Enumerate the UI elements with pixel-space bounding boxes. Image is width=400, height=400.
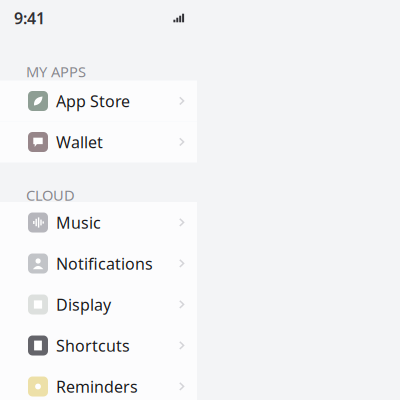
button[interactable]: Shortcuts xyxy=(0,325,197,366)
button[interactable]: Display xyxy=(0,284,197,325)
staticText: CLOUD xyxy=(26,185,75,205)
button[interactable]: Wallet xyxy=(0,121,197,162)
staticText: Notifications xyxy=(56,253,153,274)
staticText: MY APPS xyxy=(26,62,86,81)
staticText: Music xyxy=(56,212,101,233)
staticText: Display xyxy=(56,294,111,315)
button[interactable]: App Store xyxy=(0,80,197,121)
button[interactable]: Notifications xyxy=(0,243,197,284)
button[interactable]: Music xyxy=(0,202,197,243)
staticText: Reminders xyxy=(56,376,138,397)
button[interactable]: Reminders xyxy=(0,366,197,400)
staticText: Shortcuts xyxy=(56,335,130,356)
staticText: 9:41 xyxy=(14,7,45,29)
staticText: App Store xyxy=(56,90,130,112)
staticText: Wallet xyxy=(56,131,103,153)
